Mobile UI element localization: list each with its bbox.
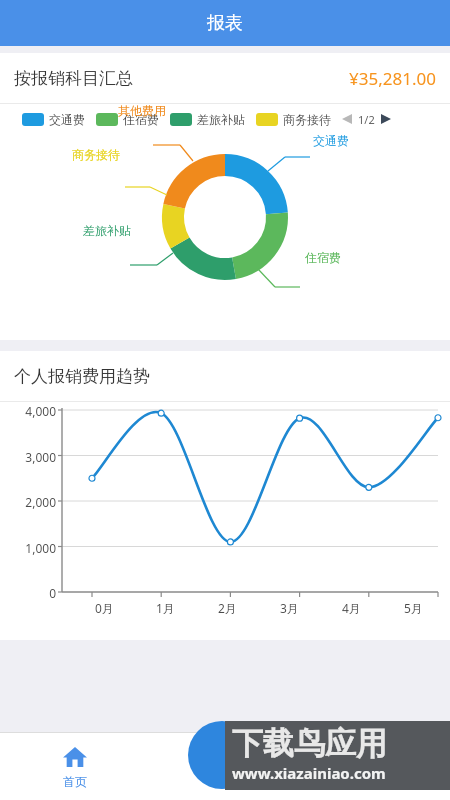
button[interactable]: 住宿费 [96,112,159,127]
staticText: 住宿费 [123,112,159,127]
staticText: 差旅补贴 [83,223,131,238]
staticText: 4月 [342,600,361,616]
staticText: 下载鸟应用 [232,724,387,763]
staticText: 首页 [63,774,87,789]
staticText: 0月 [95,600,114,616]
staticText: 住宿费 [305,250,341,265]
staticText: ¥35,281.00 [349,67,436,90]
staticText: 商务接待 [72,147,120,162]
staticText: www.xiazainiao.com [232,763,386,783]
staticText: 按报销科目汇总 [14,68,133,89]
staticText: 交通费 [49,112,85,127]
staticText: 交通费 [313,133,349,148]
staticText: 1/2 [358,112,375,127]
button[interactable]: 首页 [0,733,150,800]
button[interactable]: Next page [378,111,394,127]
button[interactable]: 报表 [150,733,300,800]
button[interactable]: 差旅补贴 [170,112,245,127]
staticText: 3月 [280,600,299,616]
staticText: 1,000 [0,540,56,556]
staticText: 个人报销费用趋势 [14,366,150,387]
button[interactable]: 商务接待 [256,112,331,127]
staticText: 5月 [404,600,423,616]
button[interactable]: Previous page [339,111,355,127]
staticText: 商务接待 [283,112,331,127]
staticText: 报表 [213,774,237,789]
staticText: 2月 [218,600,237,616]
button[interactable]: 按报销科目汇总 [0,53,450,103]
staticText: 其他费用 [118,103,166,118]
staticText: 1月 [156,600,175,616]
staticText: 2,000 [0,494,56,510]
staticText: 0 [0,585,56,601]
staticText: 差旅补贴 [197,112,245,127]
staticText: 3,000 [0,449,56,465]
staticText: 4,000 [0,403,56,419]
staticText: 报表 [207,12,243,35]
button[interactable]: 交通费 [22,112,85,127]
